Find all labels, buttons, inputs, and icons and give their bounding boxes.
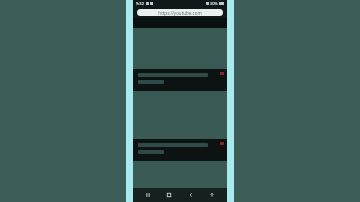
button[interactable]: [133, 139, 227, 161]
button[interactable]: [133, 69, 227, 91]
button[interactable]: Stop: [162, 188, 176, 202]
button[interactable]: Share: [205, 188, 219, 202]
staticText: 30%: [210, 1, 218, 6]
staticText: https://youtube.com: [158, 10, 202, 16]
button[interactable]: Back: [184, 188, 198, 202]
button[interactable]: Pause: [141, 188, 155, 202]
button[interactable]: https://youtube.com: [137, 9, 223, 16]
staticText: 9:32: [136, 1, 144, 6]
